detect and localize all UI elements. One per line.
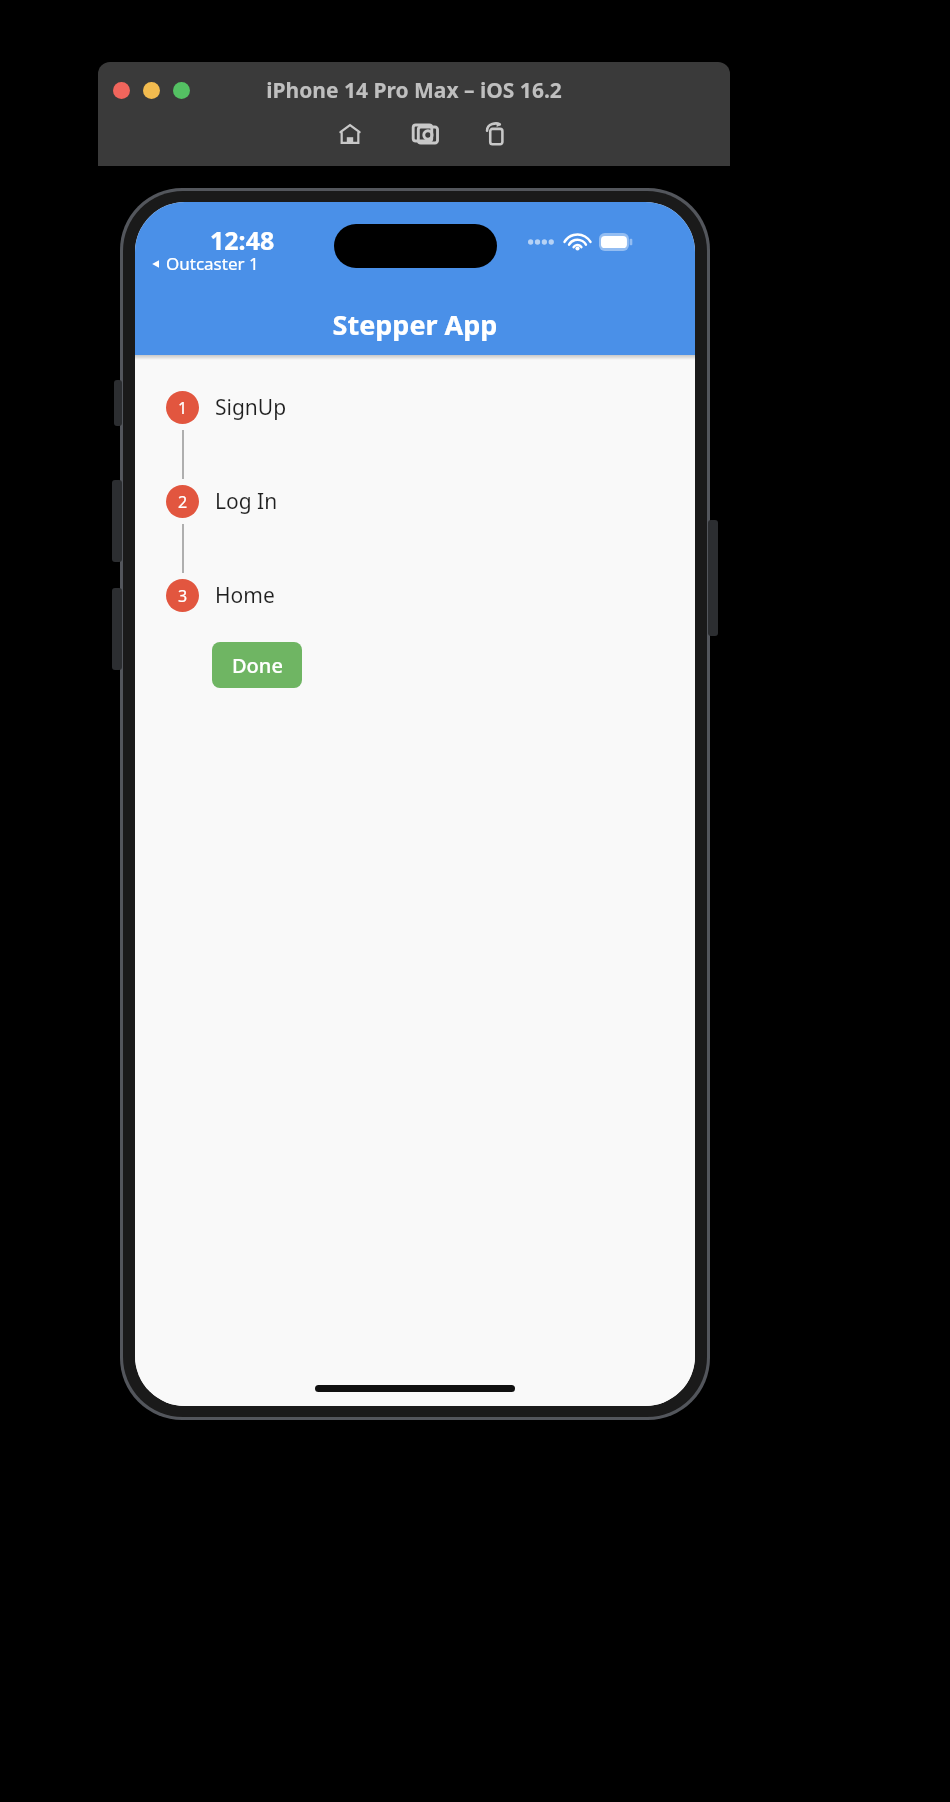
staticText: SignUp (215, 393, 287, 422)
staticText: 3 (178, 585, 188, 607)
button[interactable]: Rotate (480, 118, 512, 150)
button[interactable]: 3 (135, 579, 695, 612)
button[interactable]: Screenshot (410, 118, 442, 150)
staticText: Outcaster 1 (166, 252, 259, 275)
staticText: Done (232, 652, 283, 679)
button[interactable] (113, 82, 130, 99)
button[interactable]: Volume down (112, 588, 122, 670)
staticText: Stepper App (135, 306, 695, 343)
button[interactable]: Home (334, 118, 366, 150)
staticText: 2 (178, 491, 188, 513)
button[interactable]: 2 (135, 485, 695, 518)
button[interactable]: Volume up (112, 480, 122, 562)
button[interactable] (173, 82, 190, 99)
staticText: 1 (178, 397, 188, 419)
button[interactable]: Mute (114, 380, 122, 426)
button[interactable]: Outcaster 1 (150, 252, 259, 275)
staticText: 12:48 (210, 223, 275, 257)
staticText: Log In (215, 487, 278, 516)
button[interactable]: 1 (135, 391, 695, 424)
staticText: Home (215, 581, 275, 610)
button[interactable]: Done (212, 642, 302, 688)
staticText: iPhone 14 Pro Max – iOS 16.2 (248, 76, 580, 105)
button[interactable] (143, 82, 160, 99)
